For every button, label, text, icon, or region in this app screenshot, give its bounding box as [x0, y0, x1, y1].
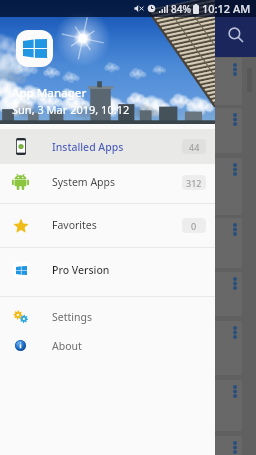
button[interactable]: More options [4, 380, 242, 431]
staticText: About [52, 339, 82, 353]
button[interactable]: More options [227, 325, 242, 340]
button[interactable]: More options [227, 276, 242, 291]
staticText: Installed Apps [52, 140, 124, 154]
staticText: 44 [189, 141, 200, 153]
button[interactable]: More options [227, 384, 242, 399]
button[interactable]: More options [4, 158, 242, 215]
staticText: Pro Version [52, 263, 110, 277]
button[interactable]: More options [4, 58, 242, 105]
staticText: App Manager [12, 85, 87, 101]
button[interactable]: More options [4, 321, 242, 375]
staticText: 0 [191, 220, 197, 232]
staticText: 10:12 AM [202, 1, 251, 16]
button[interactable]: Installed Apps [0, 129, 215, 164]
button[interactable]: Settings [0, 302, 215, 331]
button[interactable]: More options [227, 162, 242, 177]
button[interactable]: About [0, 331, 215, 360]
button[interactable]: More options [227, 440, 242, 455]
button[interactable]: Favorites [0, 208, 215, 242]
button[interactable]: More options [4, 108, 242, 153]
staticText: System Apps [52, 175, 116, 189]
staticText: Favorites [52, 218, 97, 232]
button[interactable]: Pro Version [0, 253, 215, 287]
button[interactable]: More options [227, 62, 242, 77]
button[interactable]: More options [227, 222, 242, 237]
button[interactable]: More options [227, 112, 242, 127]
button[interactable]: More options [4, 272, 242, 316]
button[interactable]: Search [221, 20, 251, 50]
staticText: 84% [171, 2, 191, 16]
button[interactable]: More options [4, 436, 242, 455]
staticText: Sun, 3 Mar 2019, 10:12 [12, 102, 130, 117]
staticText: Settings [52, 310, 92, 324]
button[interactable]: More options [4, 218, 242, 268]
button[interactable]: System Apps [0, 165, 215, 199]
staticText: 312 [186, 177, 202, 189]
